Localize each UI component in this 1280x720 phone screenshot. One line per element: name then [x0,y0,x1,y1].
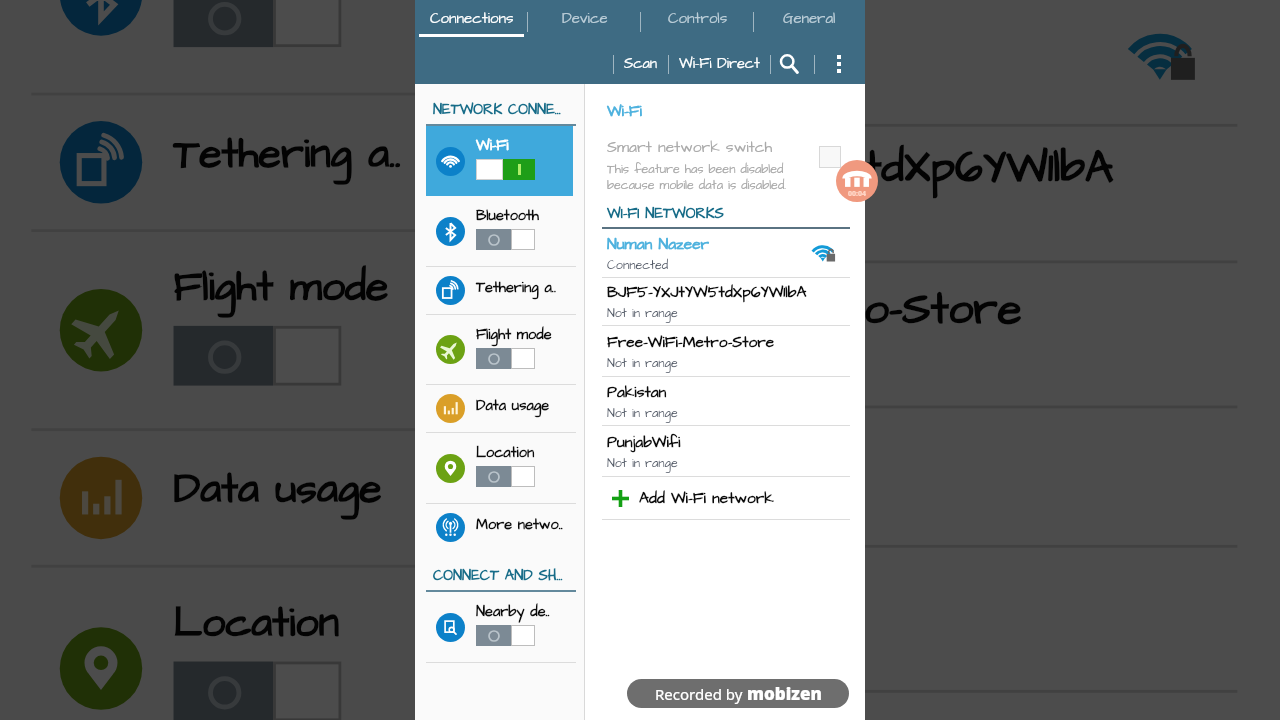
button[interactable] [173,0,341,47]
staticText: Nearby de.. [476,602,550,622]
staticText: Flight mode [476,325,552,345]
button[interactable]: Wi-Fi Direct [669,48,770,80]
button[interactable]: Add Wi-Fi network [484,693,1280,720]
staticText: Not in range [546,488,748,536]
staticText: General [783,8,836,29]
button[interactable] [476,348,535,369]
button[interactable] [476,159,535,180]
button[interactable]: Device [528,0,641,44]
button[interactable]: General [754,0,865,44]
button[interactable]: BJF5-YXJtYW5tdXp6YW1lbA [585,278,865,326]
staticText: Recorded by [655,684,747,704]
button[interactable]: Scan [614,48,668,80]
staticText: Bluetooth [476,206,540,226]
button[interactable] [173,661,341,720]
staticText: WI-FI NETWORKS [607,204,724,224]
button[interactable] [476,466,535,487]
button[interactable] [173,326,341,386]
staticText: Numan Nazeer [546,2,839,64]
staticText: Not in range [546,630,748,679]
staticText: Data usage [173,462,384,519]
button[interactable]: Search [771,47,807,81]
button[interactable]: Data usage [0,431,481,565]
staticText: Connected [546,67,722,115]
button[interactable]: Numan Nazeer [585,229,865,278]
staticText: This feature has been disabled because m… [607,161,787,194]
button[interactable]: Bluetooth [0,0,481,93]
button[interactable]: Wi-Fi [426,126,573,196]
staticText: Pakistan [546,423,717,485]
button[interactable]: Data usage [415,385,584,432]
button[interactable]: Nearby de.. [415,592,584,662]
staticText: BJF5-YXJtYW5tdXp6YW1lbA [607,282,807,304]
staticText: Not in range [607,405,678,422]
button[interactable]: Location [415,433,584,503]
button[interactable]: Tethering a.. [0,95,481,229]
staticText: Add Wi-Fi network [639,488,774,510]
button[interactable]: Add Wi-Fi network [585,477,865,520]
staticText: PunjabWifi [546,565,757,627]
button[interactable]: Bluetooth [415,196,584,266]
staticText: Controls [668,8,728,29]
staticText: Flight mode [173,260,390,317]
button[interactable]: More netwo.. [415,504,584,551]
staticText: Numan Nazeer [607,234,710,256]
button[interactable]: Controls [641,0,754,44]
staticText: Smart network switch [607,137,773,159]
staticText: Not in range [546,346,748,394]
button[interactable]: Pakistan [585,377,865,426]
staticText: Not in range [546,204,748,252]
button[interactable]: Pakistan [484,408,1280,548]
staticText: More netwo.. [476,515,563,535]
staticText: Not in range [607,455,678,472]
button[interactable]: BJF5-YXJtYW5tdXp6YW1lbA [484,127,1280,263]
staticText: PunjabWifi [607,432,681,454]
button[interactable]: Connections [415,0,528,44]
staticText: Location [476,443,535,463]
button[interactable] [476,229,535,250]
button[interactable]: Location [0,568,481,720]
staticText: Wi-Fi [607,101,642,123]
staticText: mobizen [747,682,822,705]
button[interactable]: Free-WiFi-Metro-Store [484,263,1280,408]
staticText: 00:04 [848,189,866,199]
staticText: Free-WiFi-Metro-Store [546,280,1024,343]
button[interactable]: Numan Nazeer [484,0,1280,127]
button[interactable]: PunjabWifi [484,548,1280,693]
button[interactable]: Smart network switch [585,137,865,194]
staticText: Scan [624,54,658,74]
button[interactable]: Tethering a.. [415,267,584,314]
staticText: Connections [430,8,514,29]
staticText: Not in range [607,355,678,372]
staticText: Not in range [607,305,678,322]
staticText: Connected [607,257,669,274]
button[interactable]: Flight mode [0,232,481,428]
staticText: Data usage [476,396,550,416]
staticText: Device [562,8,608,29]
staticText: Tethering a.. [476,278,556,298]
staticText: Free-WiFi-Metro-Store [607,332,775,354]
staticText: Wi-Fi [476,136,509,156]
staticText: Location [173,596,341,653]
button[interactable]: Free-WiFi-Metro-Store [585,326,865,377]
staticText: Tethering a.. [173,127,401,184]
staticText: Pakistan [607,382,667,404]
staticText: BJF5-YXJtYW5tdXp6YW1lbA [546,138,1115,201]
button[interactable]: More options [815,47,863,81]
button[interactable] [476,625,535,646]
staticText: NETWORK CONNE... [433,100,561,120]
staticText: Wi-Fi Direct [679,54,760,74]
staticText: CONNECT AND SH... [433,566,563,586]
button[interactable]: Flight mode [415,315,584,384]
button[interactable]: PunjabWifi [585,426,865,477]
